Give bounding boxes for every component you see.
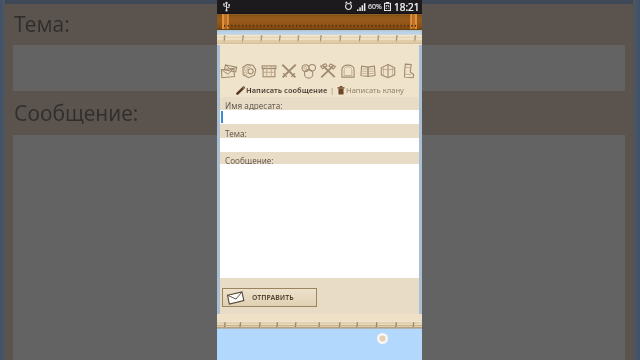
button[interactable]: Gifts xyxy=(379,62,397,80)
staticText: 60% xyxy=(368,2,382,12)
staticText: ОТПРАВИТЬ xyxy=(252,293,294,302)
button[interactable]: ОТПРАВИТЬ xyxy=(222,288,317,307)
staticText: Сообщение: xyxy=(14,99,139,128)
staticText: 18:21 xyxy=(394,0,420,13)
staticText: Имя адресата: xyxy=(225,100,283,111)
button[interactable]: Resources xyxy=(300,62,318,80)
button[interactable]: Mail xyxy=(220,62,238,80)
button[interactable]: Library xyxy=(359,62,377,80)
button[interactable]: Gate xyxy=(339,62,357,80)
button[interactable]: Написать клану xyxy=(337,85,404,95)
staticText: Написать сообщение xyxy=(246,85,328,95)
button[interactable]: Loading indicator xyxy=(377,333,388,344)
staticText: | xyxy=(328,85,337,95)
staticText: Тема: xyxy=(225,128,247,139)
button[interactable]: Inventory xyxy=(399,62,417,80)
button[interactable]: Battles xyxy=(280,62,298,80)
staticText: Тема: xyxy=(14,10,70,39)
button[interactable]: Shop xyxy=(260,62,278,80)
staticText: Написать клану xyxy=(346,85,404,95)
button[interactable]: Написать сообщение xyxy=(236,85,328,95)
staticText: Сообщение: xyxy=(225,155,274,166)
button[interactable]: Quests xyxy=(240,62,258,80)
button[interactable]: Recipient name xyxy=(220,110,419,124)
button[interactable]: Craft xyxy=(319,62,337,80)
